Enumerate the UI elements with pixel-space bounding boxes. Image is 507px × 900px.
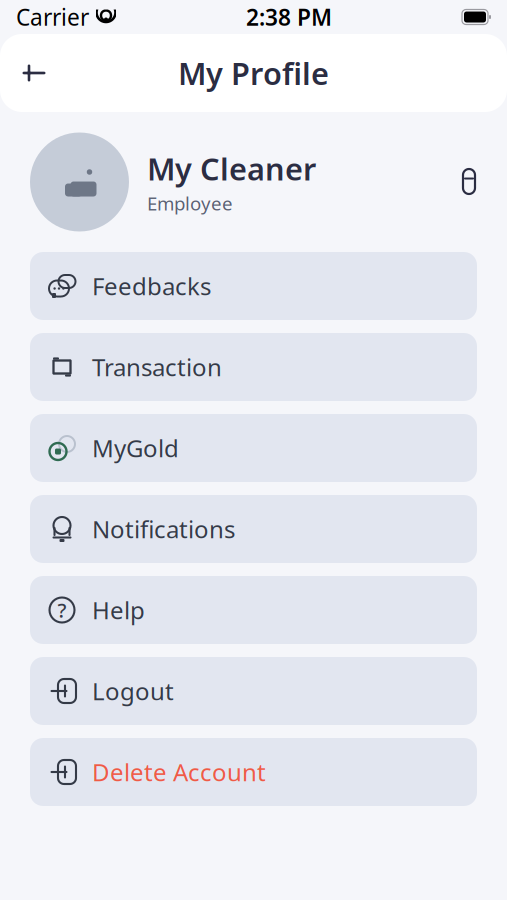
button[interactable]: Delete Account (30, 738, 477, 806)
button[interactable]: Edit profile (447, 160, 491, 204)
staticText: Transaction (92, 351, 222, 383)
button[interactable]: MyGold (30, 414, 477, 482)
staticText: Help (92, 594, 145, 626)
button[interactable]: Logout (30, 657, 477, 725)
staticText: My Cleaner (147, 148, 316, 189)
staticText: MyGold (92, 432, 179, 464)
button[interactable]: Back (12, 51, 56, 95)
button[interactable]: Feedbacks (30, 252, 477, 320)
staticText: Feedbacks (92, 270, 211, 302)
staticText: Employee (147, 191, 233, 216)
staticText: Notifications (92, 513, 235, 545)
staticText: My Profile (178, 53, 329, 93)
staticText: 2:38 PM (246, 2, 332, 32)
staticText: Logout (92, 675, 174, 707)
button[interactable]: Notifications (30, 495, 477, 563)
staticText: Carrier (16, 2, 89, 32)
staticText: ? (57, 597, 66, 623)
staticText: Delete Account (92, 756, 266, 788)
button[interactable]: ? (30, 576, 477, 644)
button[interactable]: Transaction (30, 333, 477, 401)
